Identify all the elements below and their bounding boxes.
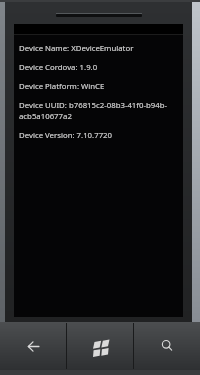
- staticText: Device Platform: WinCE: [19, 81, 178, 92]
- button[interactable]: Search: [134, 322, 200, 370]
- button[interactable]: Start: [67, 322, 133, 370]
- staticText: Device Version: 7.10.7720: [19, 130, 178, 141]
- staticText: Device Name: XDeviceEmulator: [19, 43, 178, 54]
- staticText: Device Cordova: 1.9.0: [19, 62, 178, 73]
- button[interactable]: Back: [0, 322, 66, 370]
- staticText: Device UUID: b76815c2-08b3-41f0-b94b-acb…: [19, 100, 178, 122]
